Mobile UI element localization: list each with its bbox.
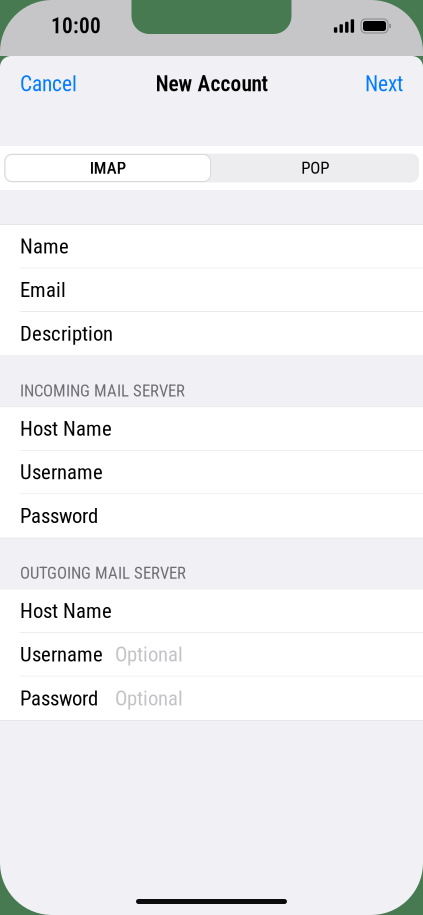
staticText: POP [301, 158, 329, 178]
staticText: Name [20, 234, 69, 258]
staticText: Optional [115, 686, 183, 710]
button[interactable]: Name [0, 225, 423, 268]
staticText: IMAP [90, 158, 126, 178]
button[interactable]: Cancel [0, 62, 91, 106]
staticText: Optional [115, 642, 183, 666]
button[interactable]: Host Name [0, 590, 423, 633]
staticText: New Account [155, 71, 267, 96]
button[interactable]: Email [0, 268, 423, 312]
staticText: INCOMING MAIL SERVER [20, 381, 185, 400]
staticText: Cancel [20, 71, 77, 96]
button[interactable]: Password [0, 494, 423, 538]
staticText: Description [20, 322, 113, 346]
staticText: Next [365, 71, 403, 96]
staticText: Host Name [20, 416, 112, 441]
staticText: 10:00 [51, 13, 101, 38]
staticText: Password [20, 686, 98, 710]
button[interactable]: Host Name [0, 407, 423, 451]
button[interactable]: Description [0, 312, 423, 355]
button[interactable]: IMAP [4, 153, 211, 182]
staticText: Host Name [20, 599, 112, 623]
button[interactable]: Password [0, 677, 423, 720]
button[interactable]: Next [351, 62, 423, 106]
button[interactable]: POP [211, 153, 419, 182]
staticText: Username [20, 460, 103, 484]
staticText: Email [20, 278, 66, 302]
staticText: OUTGOING MAIL SERVER [20, 563, 186, 583]
staticText: Password [20, 504, 98, 528]
button[interactable]: Username [0, 633, 423, 677]
staticText: Username [20, 642, 103, 666]
button[interactable]: Username [0, 451, 423, 494]
